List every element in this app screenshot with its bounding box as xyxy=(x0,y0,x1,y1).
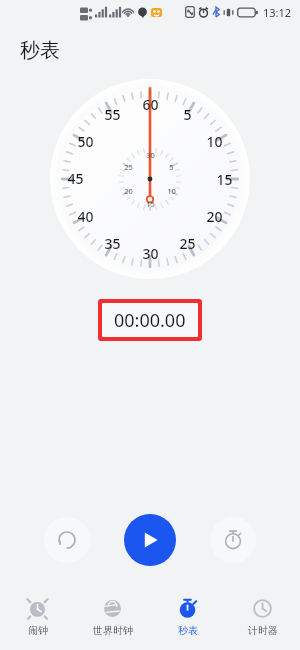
staticText: 15 xyxy=(216,170,233,189)
staticText: 计时器 xyxy=(248,624,278,637)
staticText: 闹钟 xyxy=(28,624,48,637)
staticText: 20 xyxy=(206,207,223,226)
staticText: 25 xyxy=(124,162,133,172)
button[interactable]: Start xyxy=(124,514,176,566)
button[interactable]: Timer xyxy=(210,517,256,563)
staticText: 30 xyxy=(146,150,155,160)
staticText: 25 xyxy=(179,234,196,253)
staticText: 55 xyxy=(104,105,121,124)
staticText: 10 xyxy=(206,132,223,151)
button[interactable]: 00:00.00 xyxy=(102,303,198,337)
button[interactable]: 秒表 xyxy=(150,590,225,646)
button[interactable]: 闹钟 xyxy=(0,590,75,646)
staticText: 世界时钟 xyxy=(93,624,133,637)
button[interactable]: Reset xyxy=(44,517,90,563)
button[interactable]: 世界时钟 xyxy=(75,590,150,646)
staticText: 13:12 xyxy=(263,5,292,20)
staticText: 35 xyxy=(104,234,121,253)
staticText: 15 xyxy=(146,199,155,209)
staticText: 50 xyxy=(77,132,94,151)
staticText: 20 xyxy=(124,186,133,196)
staticText: 30 xyxy=(142,244,159,263)
staticText: 60 xyxy=(142,95,159,114)
staticText: 秒表 xyxy=(20,38,60,63)
button[interactable]: 计时器 xyxy=(225,590,300,646)
staticText: 秒表 xyxy=(178,624,198,637)
staticText: 45 xyxy=(67,169,84,188)
staticText: 5 xyxy=(169,162,174,172)
staticText: 00:00.00 xyxy=(114,308,186,333)
staticText: 40 xyxy=(77,207,94,226)
staticText: 5 xyxy=(183,105,192,124)
staticText: 10 xyxy=(167,186,176,196)
